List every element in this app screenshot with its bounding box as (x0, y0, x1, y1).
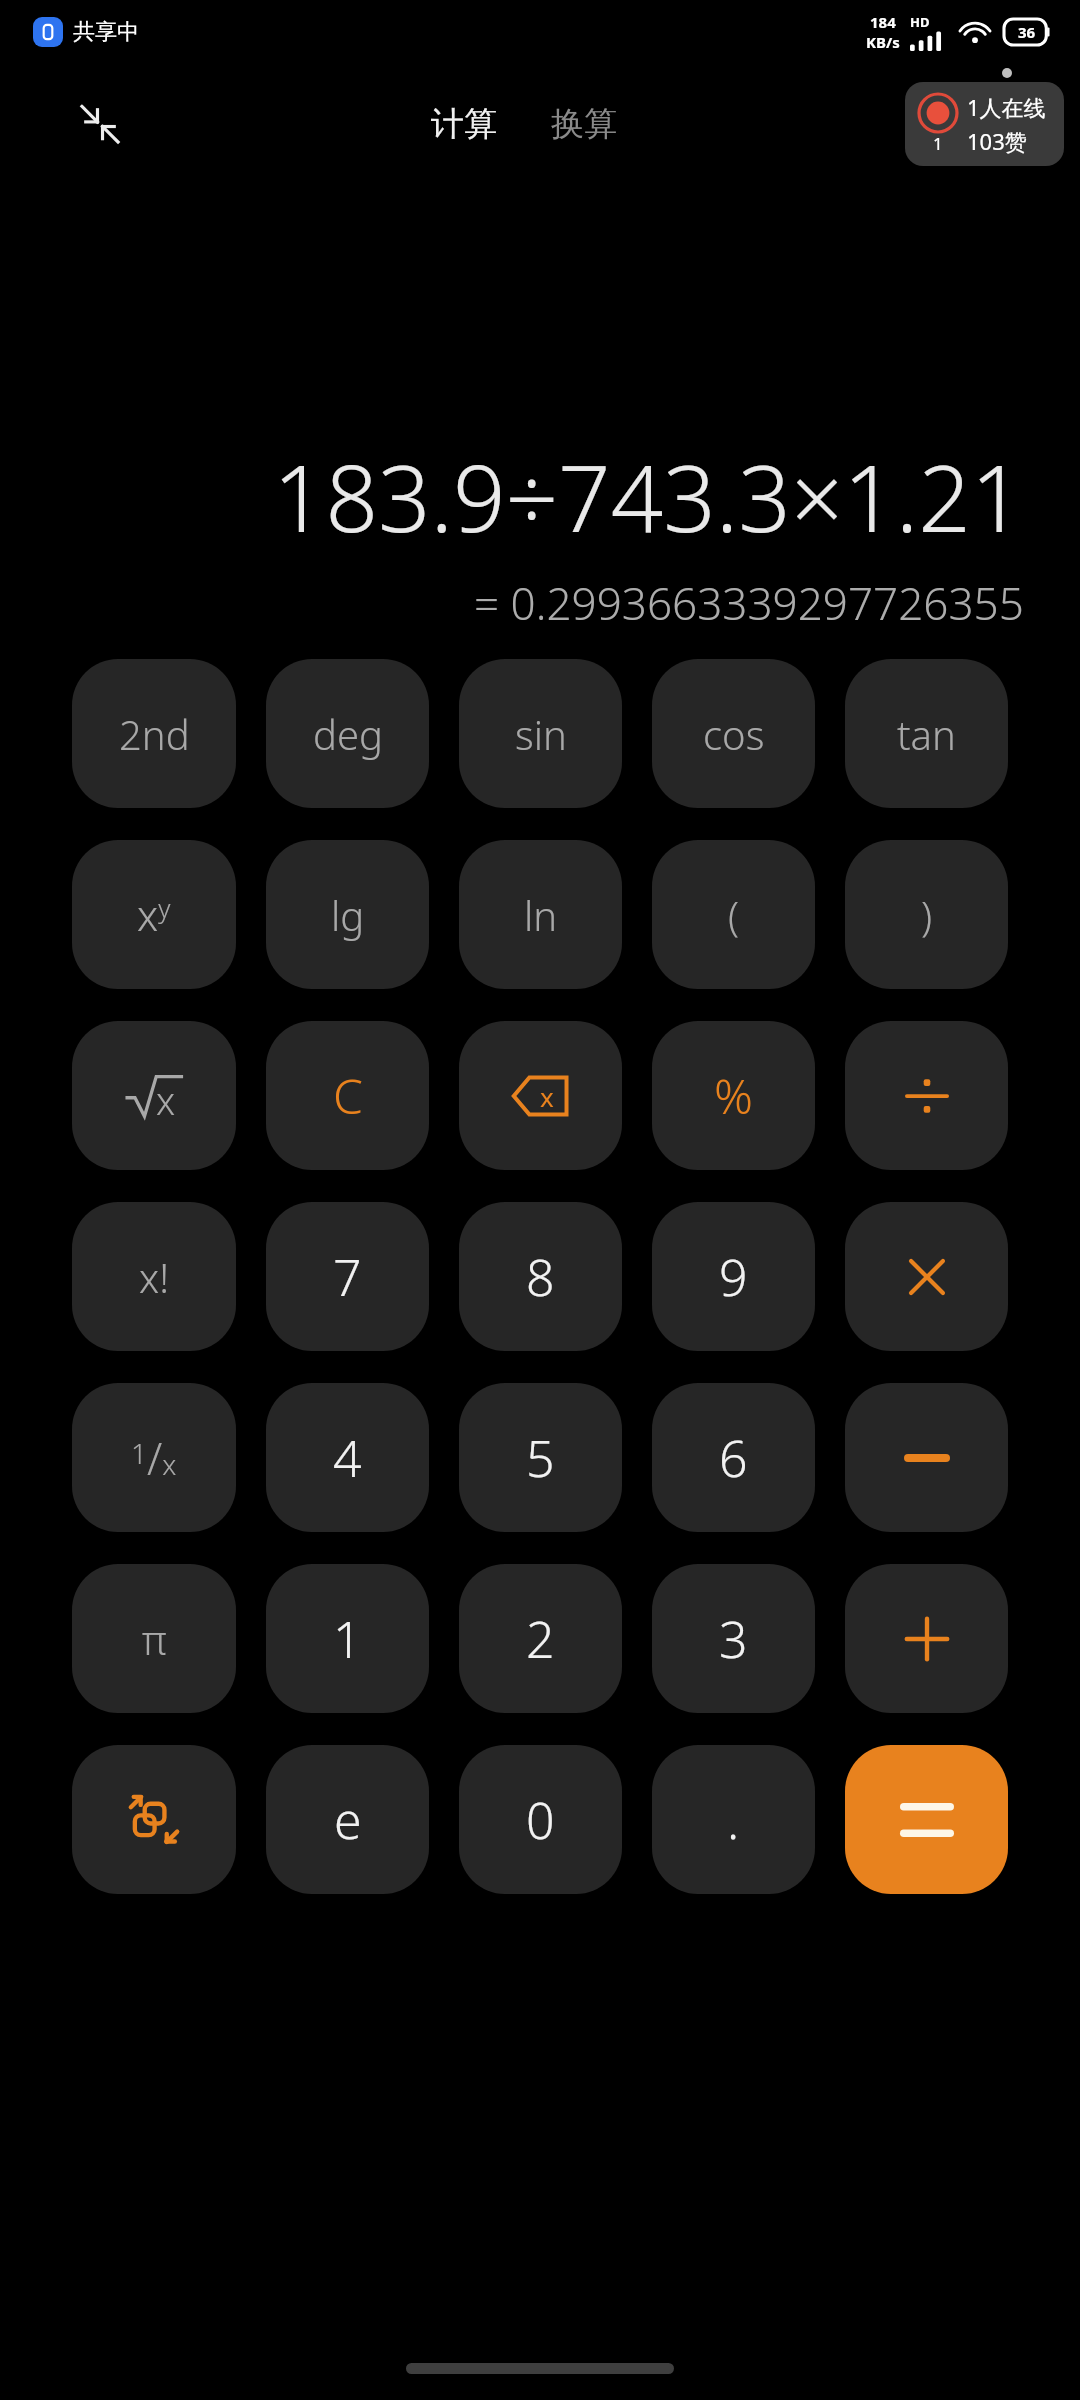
button[interactable] (845, 1021, 1008, 1170)
button[interactable] (845, 1202, 1008, 1351)
staticText: 1 (333, 1605, 362, 1673)
button[interactable] (845, 1564, 1008, 1713)
button[interactable]: 2nd (72, 659, 236, 808)
staticText: 103赞 (967, 126, 1027, 156)
button[interactable]: % (652, 1021, 815, 1170)
button[interactable]: ) (845, 840, 1008, 989)
staticText: ) (921, 888, 933, 942)
button[interactable]: 1 (266, 1564, 429, 1713)
staticText: tan (897, 707, 956, 761)
staticText: cos (703, 707, 765, 761)
button[interactable]: Collapse (72, 96, 128, 152)
button[interactable]: 计算 (421, 95, 507, 153)
button[interactable]: 4 (266, 1383, 429, 1532)
staticText: % (714, 1063, 753, 1128)
staticText: 7 (333, 1243, 362, 1311)
button[interactable]: 3 (652, 1564, 815, 1713)
staticText: x (156, 1074, 176, 1126)
staticText: 换算 (551, 103, 617, 145)
button[interactable]: lg (266, 840, 429, 989)
button[interactable]: . (652, 1745, 815, 1894)
button[interactable]: 换算 (541, 95, 627, 153)
staticText: = 0.2993663339297726355 (474, 573, 1024, 633)
button[interactable]: 8 (459, 1202, 622, 1351)
staticText: 184 (870, 12, 896, 32)
staticText: 4 (333, 1424, 362, 1492)
staticText: 183.9÷743.3×1.21 (273, 434, 1024, 559)
staticText: sin (515, 707, 567, 761)
staticText: C (333, 1063, 363, 1128)
button[interactable]: xy (72, 840, 236, 989)
button[interactable]: 2 (459, 1564, 622, 1713)
staticText: 5 (526, 1424, 555, 1492)
button[interactable]: x! (72, 1202, 236, 1351)
button[interactable]: ln (459, 840, 622, 989)
staticText: 0 (526, 1786, 555, 1854)
staticText: 3 (719, 1605, 748, 1673)
staticText: . (727, 1786, 740, 1854)
staticText: 计算 (431, 103, 497, 145)
button[interactable]: Unit conversion (72, 1745, 236, 1894)
staticText: x (540, 1079, 554, 1114)
button[interactable] (845, 1383, 1008, 1532)
button[interactable]: tan (845, 659, 1008, 808)
staticText: 2 (526, 1605, 555, 1673)
staticText: 1人在线 (967, 92, 1046, 122)
staticText: 1/x (131, 1428, 177, 1488)
staticText: 2nd (119, 707, 190, 761)
staticText: 8 (526, 1243, 555, 1311)
staticText: lg (331, 888, 365, 942)
staticText: xy (137, 886, 171, 943)
button[interactable]: 6 (652, 1383, 815, 1532)
staticText: 1 (933, 132, 943, 155)
staticText: 36 (1018, 22, 1036, 42)
button[interactable]: Square root (72, 1021, 236, 1170)
button[interactable]: 7 (266, 1202, 429, 1351)
button[interactable]: 9 (652, 1202, 815, 1351)
staticText: ( (728, 888, 740, 942)
button[interactable]: ( (652, 840, 815, 989)
staticText: 共享中 (73, 18, 139, 46)
staticText: deg (313, 707, 383, 761)
button[interactable]: 1/x (72, 1383, 236, 1532)
staticText: e (334, 1786, 362, 1854)
staticText: HD (910, 13, 930, 31)
staticText: 6 (719, 1424, 748, 1492)
button[interactable]: sin (459, 659, 622, 808)
button[interactable]: 5 (459, 1383, 622, 1532)
button[interactable]: C (266, 1021, 429, 1170)
staticText: KB/s (866, 32, 900, 52)
button[interactable]: deg (266, 659, 429, 808)
button[interactable]: e (266, 1745, 429, 1894)
staticText: 9 (719, 1243, 748, 1311)
button[interactable]: π (72, 1564, 236, 1713)
button[interactable]: Backspace (459, 1021, 622, 1170)
staticText: x! (139, 1250, 169, 1304)
button[interactable]: 0 (459, 1745, 622, 1894)
button[interactable]: 1 (905, 82, 1064, 166)
staticText: ln (524, 888, 558, 942)
button[interactable] (845, 1745, 1008, 1894)
staticText: π (142, 1612, 167, 1666)
button[interactable]: cos (652, 659, 815, 808)
